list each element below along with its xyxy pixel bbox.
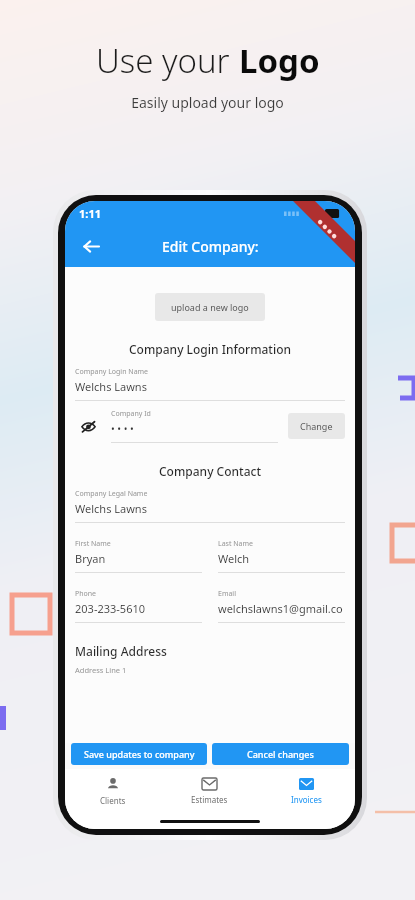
staticText: 1:11	[79, 206, 101, 221]
staticText: Last Name	[218, 539, 254, 549]
button[interactable]: Company Legal Name	[75, 489, 345, 523]
staticText: Use your	[96, 38, 239, 83]
staticText: Welch	[218, 551, 250, 566]
staticText: Company Contact	[159, 463, 262, 479]
button[interactable]: Clients	[65, 769, 161, 813]
staticText: Edit Company:	[162, 237, 259, 256]
staticText: Bryan	[75, 551, 106, 566]
staticText: welchslawns1@gmail.com	[218, 601, 345, 616]
staticText: Email	[218, 589, 236, 599]
staticText: Company Login Information	[129, 341, 292, 357]
button[interactable]: Company Login Name	[75, 367, 345, 401]
staticText: 203-233-5610	[75, 601, 146, 616]
staticText: Welchs Lawns	[75, 379, 147, 394]
button[interactable]: First Name	[75, 539, 202, 573]
button[interactable]: upload a new logo	[155, 293, 265, 321]
staticText: Company Legal Name	[75, 489, 148, 499]
button[interactable]: Email	[218, 589, 345, 623]
button[interactable]: Change	[288, 413, 345, 439]
staticText: Address Line 1	[75, 665, 127, 675]
staticText: Change	[300, 420, 333, 432]
button[interactable]: Phone	[75, 589, 202, 623]
button[interactable]: Show company id	[75, 413, 101, 439]
button[interactable]: Save updates to company	[71, 743, 207, 765]
button[interactable]: Cancel changes	[212, 743, 349, 765]
button[interactable]: Invoices	[258, 769, 355, 813]
staticText: upload a new logo	[171, 301, 249, 313]
staticText: Mailing Address	[75, 643, 167, 659]
staticText: Clients	[100, 795, 126, 806]
staticText: Cancel changes	[247, 748, 314, 760]
staticText: Company Login Name	[75, 367, 149, 377]
staticText: Easily upload your logo	[131, 93, 284, 112]
staticText: First Name	[75, 539, 111, 549]
staticText: Phone	[75, 589, 97, 599]
staticText: Save updates to company	[84, 748, 195, 760]
staticText: Invoices	[291, 794, 322, 805]
staticText: • • • •	[111, 422, 134, 436]
staticText: Estimates	[191, 794, 228, 805]
button[interactable]: Estimates	[161, 769, 258, 813]
button[interactable]: Last Name	[218, 539, 345, 573]
staticText: Company Id	[111, 409, 151, 419]
staticText: Welchs Lawns	[75, 501, 147, 516]
button[interactable]: Back	[73, 229, 107, 263]
staticText: Logo	[239, 38, 320, 83]
